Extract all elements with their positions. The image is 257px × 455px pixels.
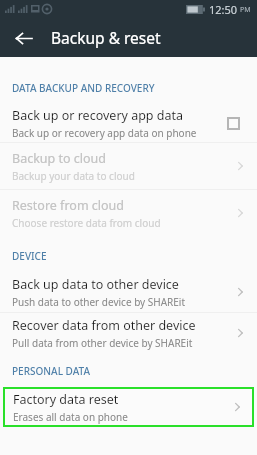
staticText: Restore from cloud [12,197,125,214]
staticText: Back up or recovery app data on phone [12,126,197,140]
staticText: Push data to other device by SHAREit [12,295,186,309]
staticText: Choose restore data from cloud [12,216,161,230]
button[interactable]: Back up or recovery app data [0,104,257,142]
button[interactable]: Back up data to other device [0,272,257,312]
staticText: Recover data from other device [12,317,196,334]
staticText: Backup & reset [51,27,161,48]
staticText: Backup to cloud [12,150,107,167]
staticText: Pull data from other device by SHAREit [12,336,193,350]
staticText: Back up data to other device [12,276,179,293]
button[interactable]: Back [6,21,40,55]
staticText: 12:50 [209,2,238,17]
staticText: Backup your data to cloud [12,169,135,183]
staticText: Back up or recovery app data [12,107,184,124]
staticText: Factory data reset [13,391,119,408]
staticText: DATA BACKUP AND RECOVERY [12,81,155,95]
staticText: DEVICE [12,249,47,263]
button[interactable]: Recover data from other device [0,313,257,353]
staticText: PERSONAL DATA [12,364,91,378]
button[interactable]: Factory data reset [3,387,254,427]
staticText: PM [240,5,251,15]
staticText: Erases all data on phone [13,410,128,424]
